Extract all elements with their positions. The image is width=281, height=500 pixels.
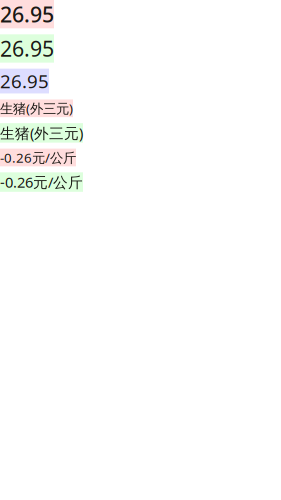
staticText: 生猪(外三元) (0, 99, 73, 117)
staticText: 26.95 (0, 69, 49, 93)
staticText: -0.26元/公斤 (0, 172, 83, 192)
staticText: 26.95 (0, 0, 54, 28)
staticText: 26.95 (0, 34, 54, 63)
staticText: 生猪(外三元) (0, 123, 83, 143)
staticText: -0.26元/公斤 (0, 149, 76, 166)
